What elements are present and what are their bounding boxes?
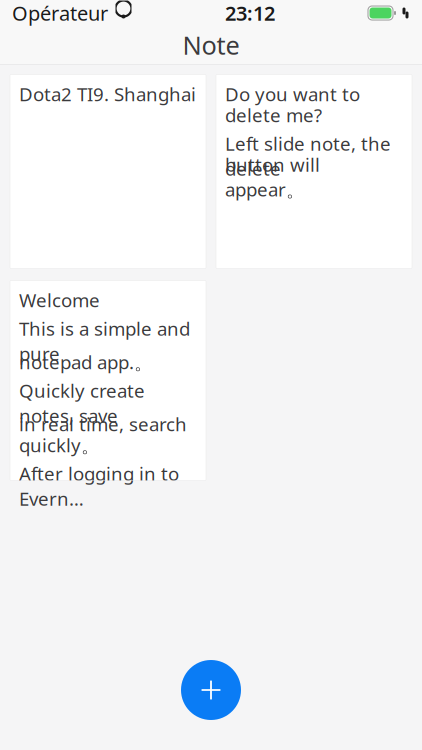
staticText: Quickly create notes, save bbox=[19, 378, 145, 428]
staticText: Welcome bbox=[19, 288, 100, 312]
staticText: This is a simple and pure bbox=[19, 316, 190, 366]
staticText: After logging in to Evern… bbox=[19, 461, 179, 511]
staticText: notepad app.。 bbox=[19, 350, 153, 374]
staticText: Do you want to bbox=[225, 82, 360, 106]
staticText: in real time, search bbox=[19, 412, 187, 436]
staticText: button will appear。 bbox=[225, 152, 320, 202]
staticText: delete me? bbox=[225, 103, 322, 127]
staticText: Opérateur bbox=[12, 0, 108, 26]
button[interactable]: Welcome bbox=[10, 280, 206, 480]
staticText: 23:12 bbox=[225, 0, 275, 26]
staticText: quickly。 bbox=[19, 433, 100, 457]
staticText: Left slide note, the delete bbox=[225, 131, 391, 181]
button[interactable]: Do you want to bbox=[216, 74, 412, 268]
staticText: Dota2 TI9. Shanghai bbox=[19, 82, 196, 106]
staticText: Note bbox=[182, 28, 239, 62]
button[interactable]: New note bbox=[181, 660, 241, 720]
button[interactable]: Dota2 TI9. Shanghai bbox=[10, 74, 206, 268]
